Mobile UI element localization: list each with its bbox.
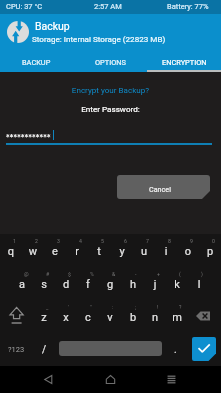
staticText: +: [157, 271, 160, 277]
staticText: c: [77, 311, 99, 324]
staticText: e: [44, 245, 66, 258]
button[interactable]: Cancel: [117, 175, 210, 199]
button[interactable]: 3: [44, 234, 66, 267]
staticText: ENCRYPTION: [162, 58, 207, 67]
button[interactable]: &: [99, 267, 121, 300]
staticText: u: [133, 245, 155, 258]
button[interactable]: Enter: [192, 337, 216, 361]
staticText: d: [55, 278, 77, 291]
button[interactable]: Space: [59, 341, 162, 356]
button[interactable]: Home: [98, 366, 122, 393]
staticText: r: [66, 245, 88, 258]
button[interactable]: 9: [177, 234, 199, 267]
button[interactable]: 8: [155, 234, 177, 267]
button[interactable]: %: [77, 267, 99, 300]
staticText: ": [90, 304, 92, 310]
staticText: !: [157, 304, 159, 310]
staticText: b: [122, 311, 144, 324]
button[interactable]: _: [33, 300, 55, 333]
staticText: 2: [35, 238, 38, 244]
staticText: f: [77, 278, 99, 291]
staticText: @: [24, 271, 29, 277]
staticText: CPU: 37 °C: [6, 2, 43, 11]
button[interactable]: $: [55, 267, 77, 300]
button[interactable]: Recent apps: [159, 366, 183, 393]
button[interactable]: BACKUP: [0, 50, 73, 72]
staticText: -: [135, 271, 137, 277]
staticText: 7: [146, 238, 149, 244]
staticText: :: [112, 304, 114, 310]
staticText: OPTIONS: [95, 58, 126, 67]
button[interactable]: Backspace: [188, 300, 221, 333]
button[interactable]: Back: [36, 366, 60, 393]
staticText: s: [33, 278, 55, 291]
button[interactable]: OPTIONS: [73, 50, 147, 72]
button[interactable]: +: [144, 267, 166, 300]
button[interactable]: ': [55, 300, 77, 333]
staticText: 5: [101, 238, 104, 244]
button[interactable]: ): [188, 267, 210, 300]
staticText: Enter Password:: [0, 104, 221, 113]
staticText: Storage: Internal Storage (22823 MB): [32, 34, 166, 43]
button[interactable]: @: [11, 267, 33, 300]
staticText: n: [144, 311, 166, 324]
staticText: y: [111, 245, 133, 258]
staticText: _: [46, 304, 49, 310]
staticText: ;: [135, 304, 137, 310]
staticText: .: [174, 344, 177, 356]
staticText: t: [88, 245, 110, 258]
staticText: 0: [212, 238, 215, 244]
staticText: j: [144, 278, 166, 291]
button[interactable]: ": [77, 300, 99, 333]
staticText: v: [99, 311, 121, 324]
staticText: p: [199, 245, 221, 258]
staticText: 9: [190, 238, 193, 244]
staticText: ': [68, 304, 69, 310]
staticText: Cancel: [149, 185, 171, 193]
button[interactable]: 1: [0, 234, 22, 267]
button[interactable]: 2: [22, 234, 44, 267]
button[interactable]: ;: [122, 300, 144, 333]
staticText: k: [166, 278, 188, 291]
staticText: 8: [168, 238, 171, 244]
staticText: %: [90, 271, 94, 277]
staticText: i: [155, 245, 177, 258]
staticText: w: [22, 245, 44, 258]
button[interactable]: #: [33, 267, 55, 300]
staticText: h: [122, 278, 144, 291]
button[interactable]: ?: [166, 300, 188, 333]
staticText: $: [68, 271, 71, 277]
staticText: ): [201, 271, 203, 277]
staticText: /: [42, 344, 47, 356]
staticText: q: [0, 245, 22, 258]
staticText: BACKUP: [22, 58, 51, 67]
button[interactable]: (: [166, 267, 188, 300]
button[interactable]: 6: [111, 234, 133, 267]
staticText: (: [179, 271, 181, 277]
button[interactable]: 0: [199, 234, 221, 267]
button[interactable]: Shift: [0, 300, 33, 333]
staticText: g: [99, 278, 121, 291]
staticText: a: [11, 278, 33, 291]
staticText: Backup: [35, 20, 70, 32]
staticText: 2:57 AM: [94, 2, 122, 11]
staticText: o: [177, 245, 199, 258]
button[interactable]: 5: [88, 234, 110, 267]
staticText: 6: [124, 238, 127, 244]
staticText: ?: [179, 304, 182, 310]
staticText: ?123: [8, 345, 25, 354]
staticText: Encrypt your Backup?: [0, 85, 221, 94]
button[interactable]: ENCRYPTION: [147, 50, 221, 72]
button[interactable]: -: [122, 267, 144, 300]
button[interactable]: :: [99, 300, 121, 333]
button[interactable]: ?123: [0, 333, 33, 366]
staticText: #: [46, 271, 50, 277]
button[interactable]: .: [165, 333, 186, 366]
staticText: x: [55, 311, 77, 324]
button[interactable]: 4: [66, 234, 88, 267]
button[interactable]: 7: [133, 234, 155, 267]
staticText: Battery: 77%: [167, 2, 209, 11]
button[interactable]: /: [33, 333, 55, 366]
staticText: l: [188, 278, 210, 291]
button[interactable]: !: [144, 300, 166, 333]
